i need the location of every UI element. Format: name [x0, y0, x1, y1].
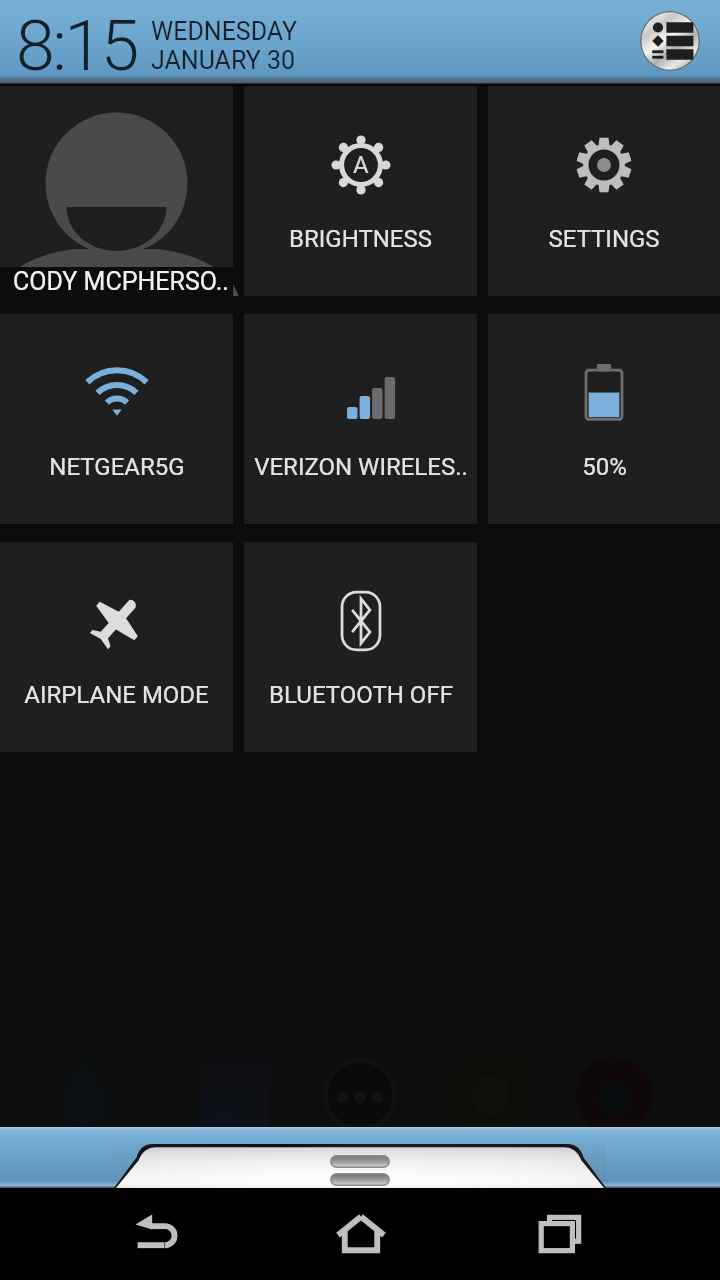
button[interactable]: SETTINGS	[488, 86, 720, 296]
button[interactable]: Back	[60, 1188, 260, 1280]
button[interactable]: Close quick settings	[0, 1127, 720, 1188]
staticText: A	[353, 151, 369, 179]
staticText: SETTINGS	[548, 225, 660, 253]
staticText: VERIZON WIRELES..	[254, 453, 468, 481]
button[interactable]: CODY MCPHERSO..	[0, 86, 233, 296]
staticText: NETGEAR5G	[49, 453, 185, 481]
button[interactable]: A	[244, 86, 477, 296]
staticText: 50%	[582, 453, 627, 481]
button[interactable]: NETGEAR5G	[0, 314, 233, 524]
button[interactable]: 50%	[488, 314, 720, 524]
button[interactable]: VERIZON WIRELES..	[244, 314, 477, 524]
button[interactable]: Quick settings	[640, 11, 700, 71]
staticText: BLUETOOTH OFF	[269, 681, 453, 709]
staticText: AIRPLANE MODE	[24, 681, 209, 709]
button[interactable]: Home	[261, 1188, 461, 1280]
button[interactable]: Recent apps	[462, 1188, 662, 1280]
button[interactable]: AIRPLANE MODE	[0, 542, 233, 752]
staticText: JANUARY 30	[151, 46, 296, 75]
staticText: WEDNESDAY	[151, 17, 298, 46]
staticText: BRIGHTNESS	[289, 225, 432, 253]
button[interactable]: BLUETOOTH OFF	[244, 542, 477, 752]
staticText: CODY MCPHERSO..	[13, 267, 229, 296]
staticText: 8:15	[16, 5, 137, 86]
